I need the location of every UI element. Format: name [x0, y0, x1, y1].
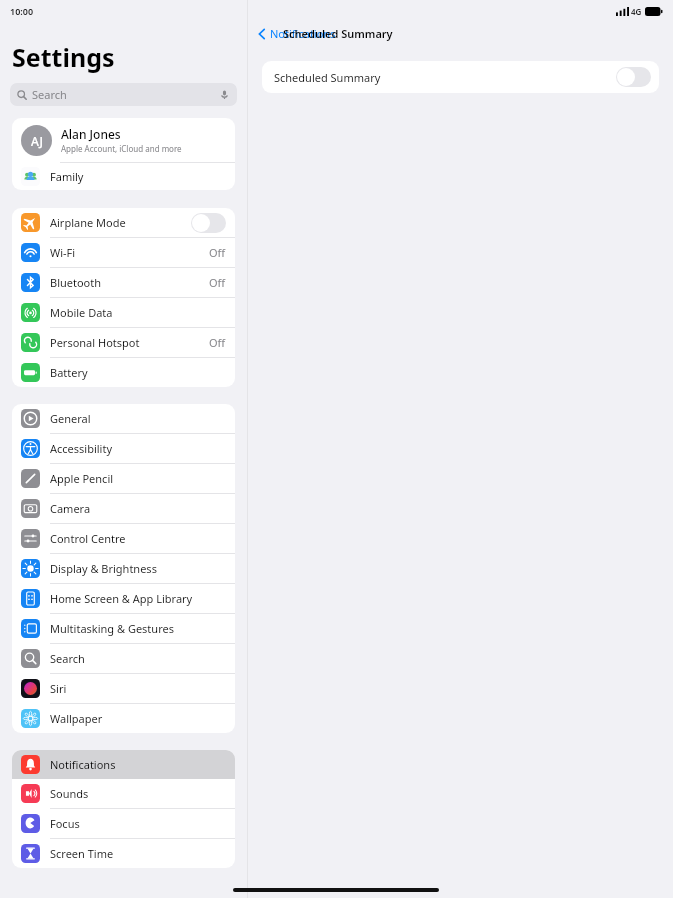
button[interactable]: Notifications: [12, 750, 235, 779]
staticText: Scheduled Summary: [274, 70, 381, 85]
button[interactable]: Apple Pencil: [12, 464, 235, 493]
staticText: Family: [50, 169, 84, 184]
staticText: Personal Hotspot: [50, 335, 140, 350]
staticText: Accessibility: [50, 441, 113, 456]
staticText: Scheduled Summary: [283, 26, 393, 41]
button[interactable]: Siri: [12, 674, 235, 703]
staticText: Wi-Fi: [50, 245, 76, 260]
staticText: Battery: [50, 365, 88, 380]
staticText: Notifications: [270, 26, 336, 41]
button[interactable]: Battery: [12, 358, 235, 387]
button[interactable]: General: [12, 404, 235, 433]
staticText: Search: [50, 651, 85, 666]
button[interactable]: AJ: [12, 118, 235, 162]
button[interactable]: Airplane Mode: [12, 208, 235, 237]
staticText: 4G: [631, 6, 642, 17]
button[interactable]: Family: [12, 163, 235, 190]
staticText: Home Screen & App Library: [50, 591, 193, 606]
staticText: Apple Pencil: [50, 471, 114, 486]
button[interactable]: Personal Hotspot: [12, 328, 235, 357]
button[interactable]: Camera: [12, 494, 235, 523]
staticText: Notifications: [50, 757, 116, 772]
staticText: Apple Account, iCloud and more: [61, 143, 182, 154]
button[interactable]: Sounds: [12, 779, 235, 808]
staticText: General: [50, 411, 91, 426]
staticText: 10:00: [10, 5, 34, 17]
staticText: Mobile Data: [50, 305, 113, 320]
button[interactable]: Multitasking & Gestures: [12, 614, 235, 643]
button[interactable]: Bluetooth: [12, 268, 235, 297]
button[interactable]: Scheduled Summary: [262, 61, 659, 93]
staticText: Siri: [50, 681, 67, 696]
staticText: Off: [209, 335, 226, 350]
staticText: Off: [209, 275, 226, 290]
button[interactable]: Wallpaper: [12, 704, 235, 733]
button[interactable]: Home Screen & App Library: [12, 584, 235, 613]
staticText: AJ: [31, 133, 43, 149]
button[interactable]: Focus: [12, 809, 235, 838]
button[interactable]: Display & Brightness: [12, 554, 235, 583]
button[interactable]: Mobile Data: [12, 298, 235, 327]
staticText: Settings: [12, 40, 115, 74]
staticText: Alan Jones: [61, 126, 121, 142]
staticText: Search: [32, 87, 67, 102]
staticText: Control Centre: [50, 531, 126, 546]
staticText: Off: [209, 245, 226, 260]
staticText: Wallpaper: [50, 711, 103, 726]
staticText: Camera: [50, 501, 91, 516]
button[interactable]: Search: [12, 644, 235, 673]
staticText: Screen Time: [50, 846, 114, 861]
staticText: Sounds: [50, 786, 89, 801]
staticText: Multitasking & Gestures: [50, 621, 174, 636]
staticText: Bluetooth: [50, 275, 102, 290]
button[interactable]: Control Centre: [12, 524, 235, 553]
staticText: Focus: [50, 816, 80, 831]
staticText: Airplane Mode: [50, 215, 126, 230]
button[interactable]: Toggle: [616, 67, 651, 87]
button[interactable]: Search: [10, 83, 237, 106]
button[interactable]: Wi-Fi: [12, 238, 235, 267]
button[interactable]: Toggle: [191, 213, 226, 233]
button[interactable]: Notifications: [248, 26, 342, 41]
staticText: Display & Brightness: [50, 561, 157, 576]
button[interactable]: Screen Time: [12, 839, 235, 868]
button[interactable]: Accessibility: [12, 434, 235, 463]
